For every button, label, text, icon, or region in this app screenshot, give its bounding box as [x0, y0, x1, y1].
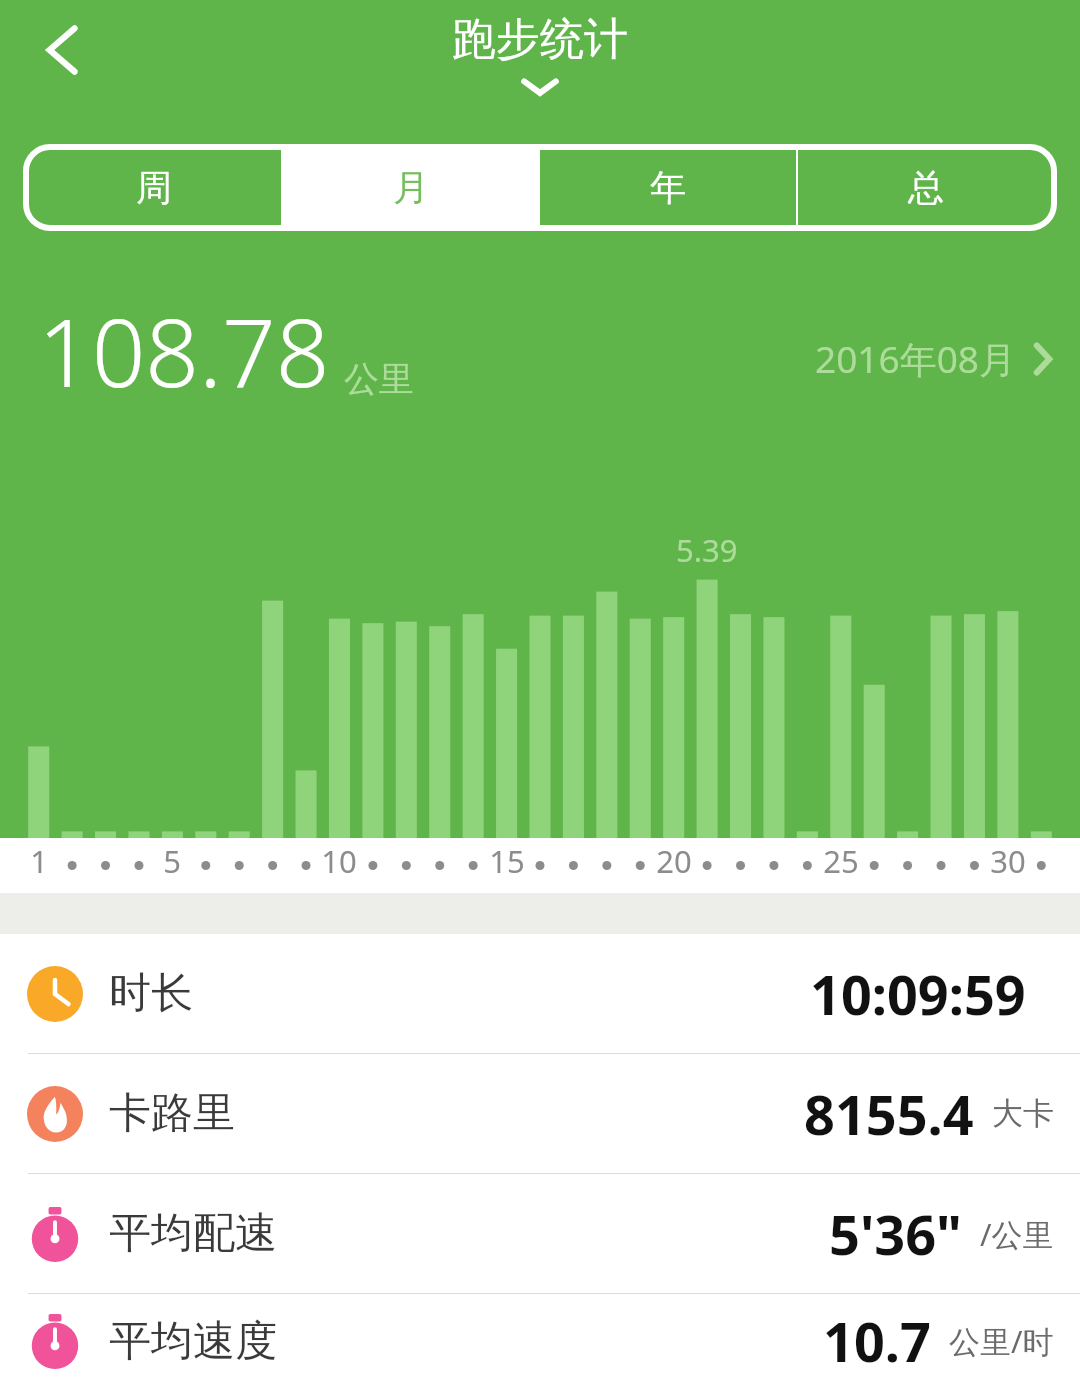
staticText: 15 — [482, 840, 532, 882]
button[interactable]: 平均配速 — [0, 1174, 1080, 1293]
staticText: 时长 — [109, 967, 193, 1020]
button[interactable]: 卡路里 — [0, 1054, 1080, 1173]
button[interactable]: 年 — [540, 147, 796, 228]
staticText: 周 — [136, 165, 172, 210]
staticText: 10:09:59 — [810, 957, 1026, 1031]
staticText: 平均速度 — [109, 1315, 277, 1368]
staticText: 卡路里 — [109, 1087, 235, 1140]
staticText: 大卡 — [992, 1094, 1054, 1133]
staticText: 5'36" — [829, 1197, 962, 1271]
button[interactable]: 时长 — [0, 934, 1080, 1053]
staticText: 1 — [14, 840, 64, 882]
button[interactable]: 跑步统计 — [0, 12, 1080, 97]
button[interactable]: 总 — [798, 147, 1054, 228]
staticText: 10 — [314, 840, 364, 882]
button[interactable]: 周 — [26, 147, 281, 228]
button[interactable]: 月 — [283, 147, 538, 228]
staticText: 总 — [908, 165, 944, 210]
staticText: 跑步统计 — [452, 12, 628, 67]
button[interactable]: 平均速度 — [0, 1294, 1080, 1388]
staticText: 5 — [147, 840, 197, 882]
staticText: 10.7 — [823, 1304, 931, 1378]
staticText: 108.78 — [38, 287, 330, 415]
staticText: 25 — [816, 840, 866, 882]
staticText: 公里 — [344, 357, 414, 401]
staticText: 30 — [983, 840, 1033, 882]
staticText: 8155.4 — [804, 1077, 974, 1151]
staticText: 平均配速 — [109, 1207, 277, 1260]
staticText: 年 — [650, 165, 686, 210]
staticText: 公里/时 — [949, 1320, 1054, 1362]
staticText: 20 — [649, 840, 699, 882]
button[interactable]: Back — [18, 4, 110, 96]
staticText: 月 — [393, 165, 429, 210]
button[interactable]: 2016年08月 — [0, 333, 1052, 384]
staticText: 2016年08月 — [815, 333, 1016, 384]
staticText: /公里 — [980, 1213, 1054, 1255]
staticText: 5.39 — [676, 529, 738, 571]
